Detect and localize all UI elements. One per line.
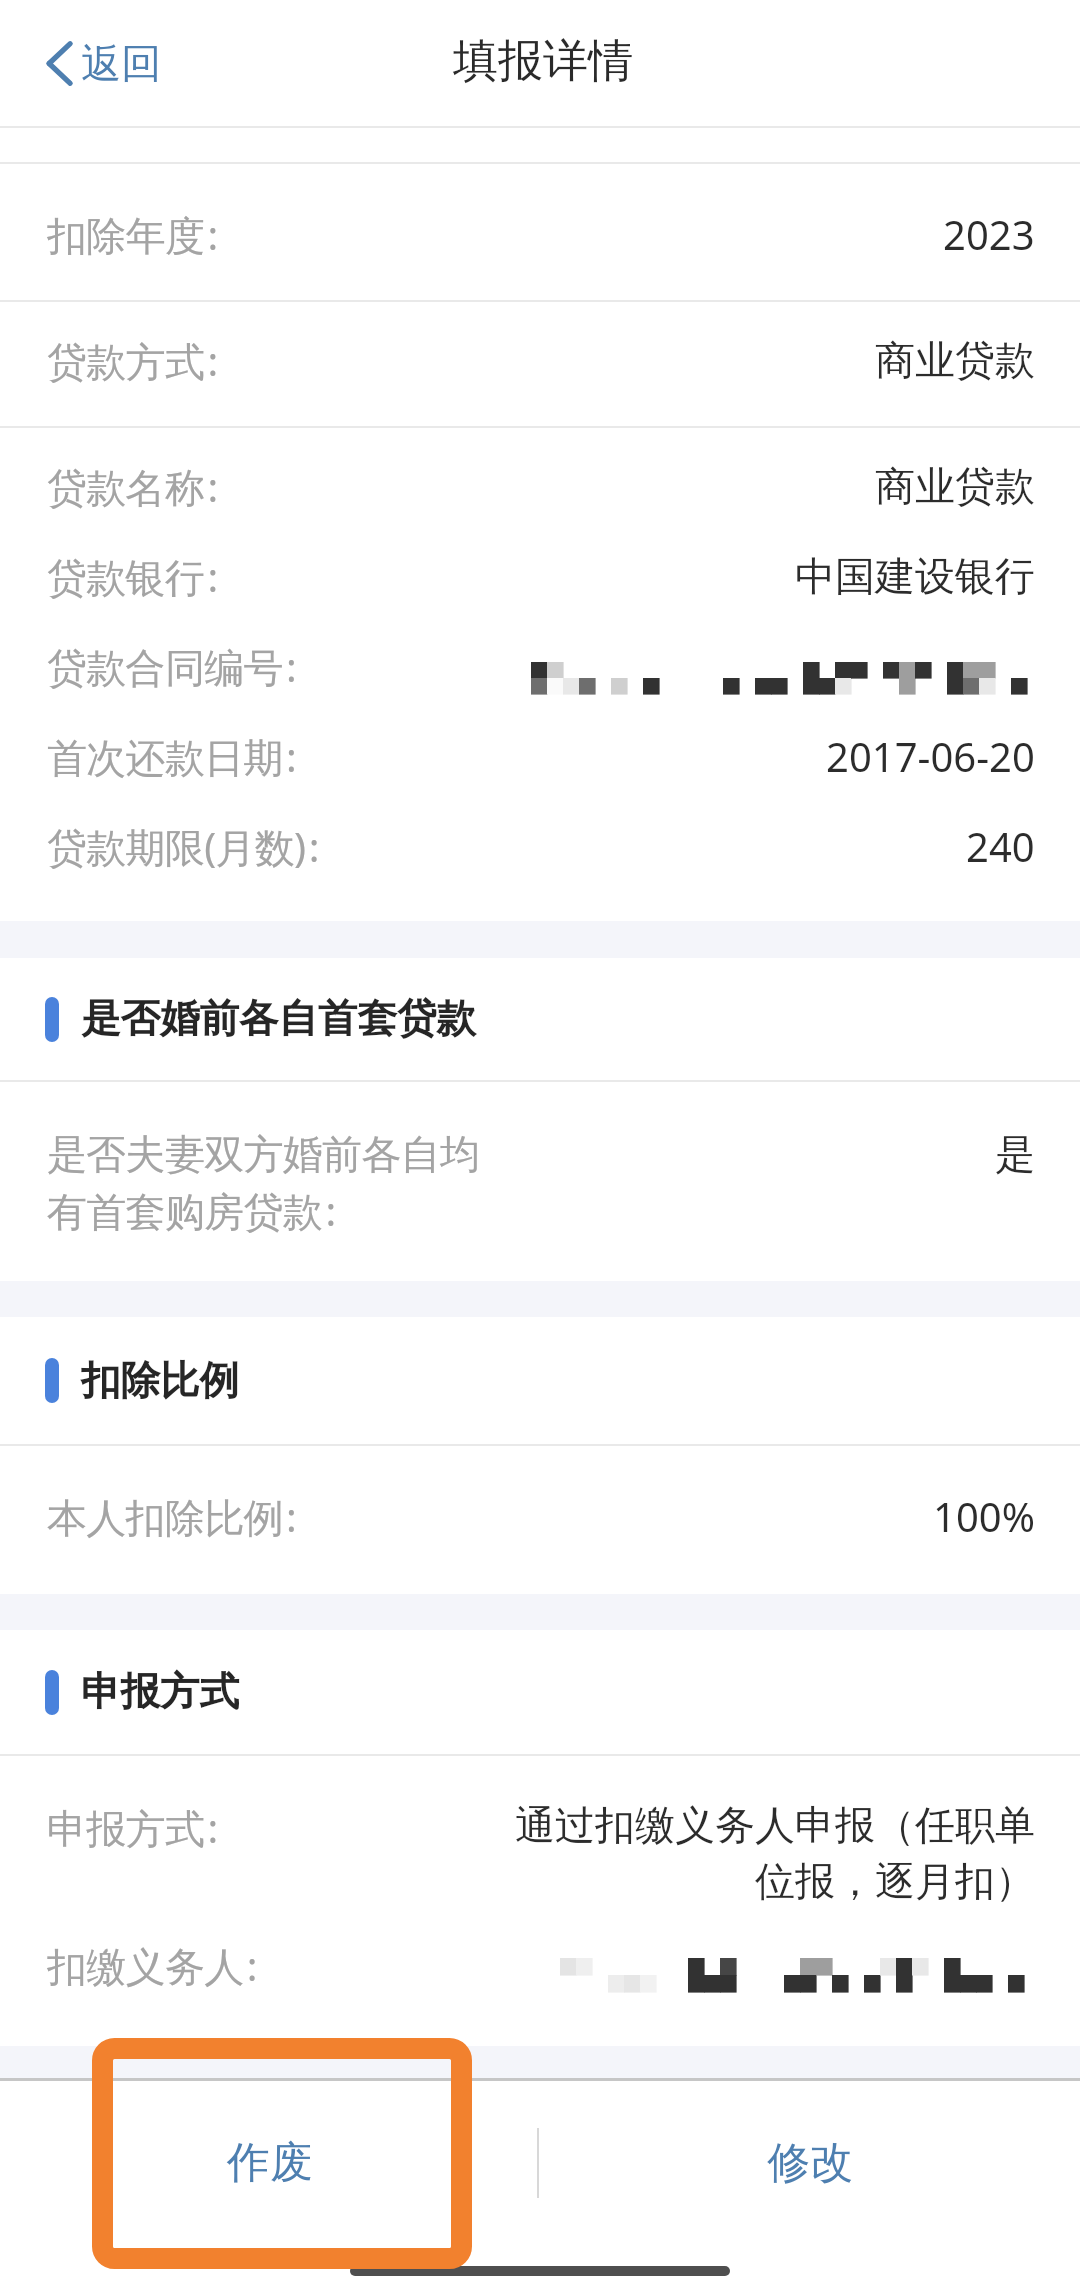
staticText: 申报方式 : <box>47 1800 218 1855</box>
staticText: 是否夫妻双方婚前各自均有首套购房贷款 : <box>47 1129 507 1238</box>
staticText: 中国建设银行 <box>795 551 1035 601</box>
staticText: 扣除比例 <box>81 1356 239 1406</box>
staticText: 240 <box>966 819 1035 873</box>
staticText: 贷款银行 : <box>47 549 218 604</box>
staticText: 申报方式 <box>81 1667 239 1717</box>
staticText: 扣除年度 : <box>47 207 218 262</box>
staticText: 商业贷款 <box>875 335 1035 385</box>
staticText: 通过扣缴义务人申报（任职单位报，逐月扣） <box>511 1800 1035 1907</box>
staticText: 返回 <box>81 38 161 88</box>
staticText: 填报详情 <box>453 33 633 90</box>
staticText: 商业贷款 <box>875 461 1035 511</box>
staticText: 扣缴义务人 : <box>47 1938 257 1993</box>
staticText: 2023 <box>943 207 1035 261</box>
staticText: 是 <box>995 1129 1035 1179</box>
staticText: 贷款期限(月数) : <box>47 819 319 874</box>
staticText: 2017-06-20 <box>826 729 1035 783</box>
staticText: 作废 <box>227 2136 313 2190</box>
staticText: 100% <box>933 1489 1035 1543</box>
button[interactable]: Back <box>0 0 195 126</box>
staticText: 贷款名称 : <box>47 459 218 514</box>
staticText: 是否婚前各自首套贷款 <box>81 994 476 1044</box>
button[interactable]: 修改 <box>540 2081 1080 2245</box>
staticText: 贷款方式 : <box>47 333 218 388</box>
staticText: 修改 <box>767 2136 853 2190</box>
staticText: 贷款合同编号 : <box>47 639 297 694</box>
button[interactable]: 作废 <box>0 2081 540 2245</box>
staticText: 首次还款日期 : <box>47 729 297 784</box>
staticText: 本人扣除比例 : <box>47 1489 297 1544</box>
